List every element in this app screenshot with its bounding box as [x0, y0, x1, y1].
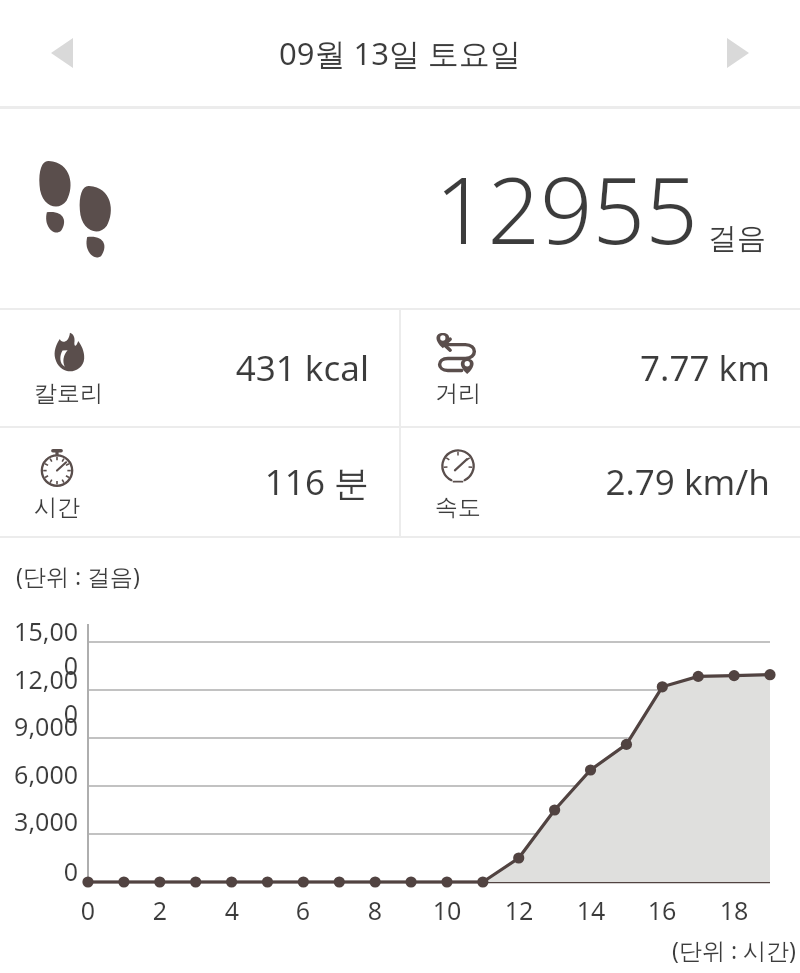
- button[interactable]: 거리: [401, 310, 800, 426]
- staticText: (단위 : 시간): [672, 934, 796, 965]
- staticText: 431 kcal: [118, 344, 369, 392]
- staticText: 09월 13일 토요일: [279, 32, 522, 74]
- staticText: 0: [68, 893, 108, 927]
- staticText: 16: [642, 893, 682, 927]
- other: Steps: [36, 161, 120, 257]
- staticText: 2.79 km/h: [519, 458, 770, 506]
- staticText: 2: [140, 893, 180, 927]
- staticText: 12,000: [0, 662, 78, 730]
- button[interactable]: Next day: [702, 17, 774, 89]
- staticText: 116 분: [118, 458, 369, 506]
- staticText: 12: [499, 893, 539, 927]
- staticText: 6: [283, 893, 323, 927]
- staticText: 칼로리: [34, 379, 103, 408]
- staticText: 18: [714, 893, 754, 927]
- button[interactable]: 칼로리: [0, 310, 399, 426]
- staticText: 시간: [34, 493, 80, 522]
- button[interactable]: Previous day: [26, 17, 98, 89]
- staticText: 15,000: [0, 614, 78, 682]
- staticText: 거리: [435, 379, 481, 408]
- button[interactable]: Steps: [0, 109, 800, 308]
- staticText: 걸음: [708, 220, 766, 257]
- button[interactable]: 시간: [0, 428, 399, 536]
- staticText: 7.77 km: [519, 344, 770, 392]
- staticText: 0: [0, 854, 78, 888]
- staticText: 8: [355, 893, 395, 927]
- staticText: 12955: [435, 146, 698, 271]
- staticText: 속도: [435, 493, 481, 522]
- staticText: 4: [212, 893, 252, 927]
- staticText: 6,000: [0, 757, 78, 791]
- staticText: 14: [571, 893, 611, 927]
- staticText: 10: [427, 893, 467, 927]
- staticText: (단위 : 걸음): [16, 560, 140, 591]
- staticText: 9,000: [0, 709, 78, 743]
- staticText: 3,000: [0, 804, 78, 838]
- button[interactable]: 속도: [401, 428, 800, 536]
